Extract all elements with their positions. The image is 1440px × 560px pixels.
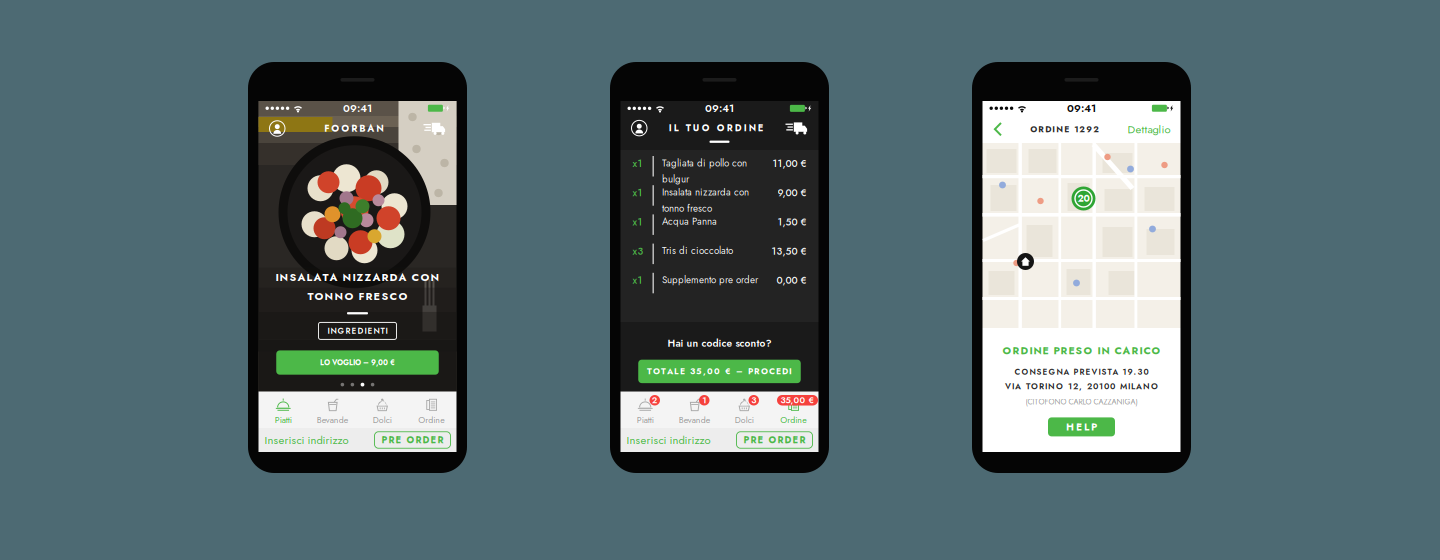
staticText: bulgur: [662, 172, 689, 186]
staticText: P R E O R D E R: [743, 433, 805, 447]
staticText: O R D I N E P R E S O I N C A R I C O: [1002, 343, 1160, 358]
button[interactable]: H E L P: [1048, 417, 1115, 436]
staticText: 09:41: [343, 100, 372, 116]
staticText: H E L P: [1066, 420, 1097, 434]
button[interactable]: Bevande: [670, 391, 719, 428]
staticText: T O N N O F R E S C O: [307, 288, 407, 304]
staticText: Ordine: [418, 414, 445, 426]
staticText: V I A T O R I N O 1 2 , 2 0 1 0 0 M I L …: [1005, 380, 1158, 392]
button[interactable]: T O T A L E 3 5 , 0 0 € – P R O C E D I: [638, 360, 801, 383]
button[interactable]: Consegne: [785, 122, 807, 135]
staticText: O R D I N E 1 2 9 2: [1030, 123, 1099, 135]
staticText: Hai un codice sconto?: [667, 336, 771, 351]
staticText: P R E O R D E R: [381, 433, 443, 447]
staticText: I L T U O O R D I N E: [669, 121, 764, 135]
staticText: 20: [1077, 192, 1089, 205]
button[interactable]: I N G R E D I E N T I: [318, 322, 396, 339]
staticText: C O N S E G N A P R E V I S T A 1 9 . 3 …: [1014, 366, 1148, 378]
staticText: Bevande: [679, 414, 711, 426]
staticText: L O V O G L I O – 9 , 0 0 €: [320, 357, 395, 368]
staticText: 09:41: [1067, 100, 1096, 116]
staticText: Tagliata di pollo con: [662, 156, 747, 170]
button[interactable]: P R E O R D E R: [736, 432, 812, 448]
staticText: 1: [702, 394, 706, 407]
staticText: F O O R B A N: [324, 122, 384, 135]
button[interactable]: Inserisci indirizzo: [626, 432, 710, 448]
button[interactable]: Inserisci indirizzo: [264, 432, 348, 448]
button[interactable]: Profilo: [631, 120, 647, 136]
staticText: x1: [632, 273, 642, 288]
staticText: 9,00 €: [777, 186, 806, 200]
button[interactable]: Dettaglio: [1127, 121, 1170, 137]
staticText: Acqua Panna: [662, 214, 717, 228]
staticText: Inserisci indirizzo: [626, 432, 710, 448]
staticText: Insalata nizzarda con: [662, 185, 749, 199]
staticText: 2: [652, 394, 658, 407]
button[interactable]: Indietro: [992, 122, 1002, 136]
button[interactable]: Bevande: [308, 391, 357, 428]
staticText: I N S A L A T A N I Z Z A R D A C O N: [275, 269, 439, 285]
button[interactable]: P R E O R D E R: [374, 432, 450, 448]
staticText: Inserisci indirizzo: [264, 432, 348, 448]
button[interactable]: Dolci: [357, 391, 407, 428]
button[interactable]: Profilo: [269, 121, 285, 136]
staticText: Ordine: [780, 414, 807, 426]
button[interactable]: Ordine: [769, 391, 818, 428]
staticText: 13,50 €: [771, 244, 806, 258]
staticText: Supplemento pre order: [662, 273, 758, 287]
staticText: 3: [751, 394, 756, 407]
staticText: Dettaglio: [1127, 121, 1170, 137]
staticText: 35,00 €: [780, 394, 814, 407]
staticText: x1: [632, 186, 642, 200]
button[interactable]: Dolci: [719, 391, 769, 428]
button[interactable]: Consegne: [423, 122, 445, 135]
button[interactable]: L O V O G L I O – 9 , 0 0 €: [276, 350, 439, 375]
staticText: Dolci: [373, 414, 392, 426]
staticText: 09:41: [705, 101, 734, 116]
staticText: 0,00 €: [776, 273, 806, 288]
staticText: Piatti: [275, 414, 292, 426]
staticText: I N G R E D I E N T I: [327, 325, 387, 337]
staticText: 11,00 €: [772, 156, 806, 171]
staticText: Tris di cioccolato: [662, 244, 733, 258]
staticText: x1: [632, 156, 642, 171]
staticText: T O T A L E 3 5 , 0 0 € – P R O C E D I: [647, 365, 792, 377]
staticText: Piatti: [637, 414, 654, 426]
button[interactable]: Piatti: [258, 391, 308, 428]
button[interactable]: Piatti: [620, 391, 670, 428]
staticText: ( C I T O F O N O C A R L O C A Z Z A N …: [1025, 396, 1137, 407]
staticText: 1,50 €: [777, 215, 806, 229]
staticText: Bevande: [317, 414, 349, 426]
button[interactable]: Ordine: [407, 391, 456, 428]
staticText: x3: [632, 244, 643, 258]
staticText: tonno fresco: [662, 201, 712, 215]
staticText: x1: [632, 215, 642, 229]
staticText: Dolci: [735, 414, 754, 426]
